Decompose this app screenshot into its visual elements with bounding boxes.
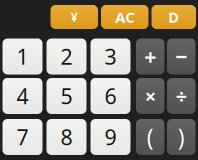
button[interactable]: Divide — [167, 78, 195, 114]
button[interactable]: Minus — [167, 38, 195, 74]
button[interactable]: 1 — [2, 38, 42, 74]
staticText: 4 — [16, 82, 28, 110]
staticText: 6 — [104, 82, 116, 110]
staticText: 8 — [60, 123, 72, 151]
staticText: AC — [115, 7, 134, 27]
staticText: 9 — [104, 123, 116, 151]
button[interactable]: Plus — [136, 38, 164, 74]
staticText: + — [144, 42, 156, 71]
staticText: − — [175, 42, 187, 71]
button[interactable]: Delete — [151, 5, 196, 29]
staticText: ) — [178, 122, 185, 152]
button[interactable]: Close parenthesis — [167, 119, 195, 155]
staticText: ¥ — [71, 9, 78, 25]
staticText: ( — [147, 122, 154, 152]
button[interactable]: 3 — [90, 38, 130, 74]
staticText: × — [145, 83, 156, 109]
button[interactable]: Open parenthesis — [136, 119, 164, 155]
button[interactable]: 4 — [2, 78, 42, 114]
staticText: 3 — [104, 42, 116, 71]
button[interactable]: 8 — [46, 119, 86, 155]
staticText: D — [168, 7, 179, 27]
button[interactable]: 2 — [46, 38, 86, 74]
staticText: 5 — [60, 82, 72, 110]
staticText: 2 — [60, 42, 72, 71]
button[interactable]: All clear — [101, 5, 148, 29]
button[interactable]: Times — [136, 78, 164, 114]
button[interactable]: 7 — [2, 119, 42, 155]
staticText: ÷ — [176, 83, 187, 109]
staticText: 7 — [16, 123, 28, 151]
staticText: 1 — [16, 42, 28, 71]
button[interactable]: 5 — [46, 78, 86, 114]
button[interactable]: 9 — [90, 119, 130, 155]
button[interactable]: Yen — [50, 5, 98, 29]
button[interactable]: 6 — [90, 78, 130, 114]
